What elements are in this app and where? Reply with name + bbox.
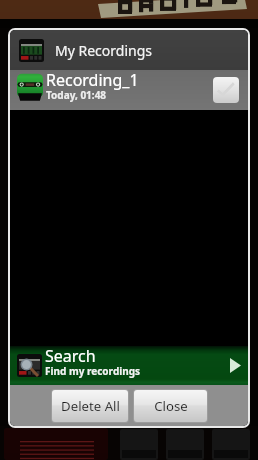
staticText: My Recordings	[55, 41, 152, 60]
button[interactable]: Recording_1	[10, 70, 248, 110]
button[interactable]: Select recording	[213, 77, 239, 103]
staticText: Today, 01:48	[46, 88, 107, 102]
button[interactable]: Search	[10, 346, 248, 385]
staticText: Delete All	[61, 397, 120, 415]
staticText: Recording_1	[46, 69, 139, 91]
button[interactable]: Close	[134, 390, 207, 422]
staticText: Close	[154, 397, 188, 415]
button[interactable]: Delete All	[52, 390, 128, 422]
other: Open search	[230, 358, 241, 373]
staticText: Search	[45, 345, 96, 367]
staticText: Find my recordings	[45, 364, 141, 378]
